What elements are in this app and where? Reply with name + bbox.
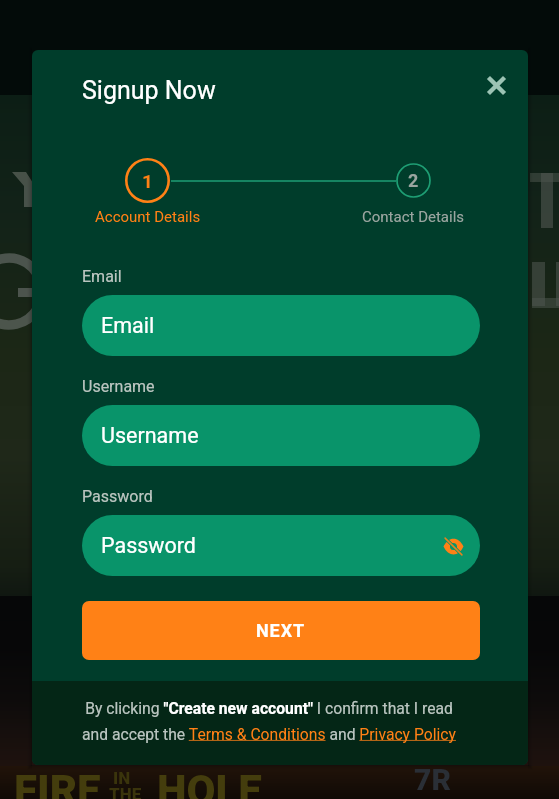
staticText: 2 [408,170,419,191]
button[interactable]: 2 [396,163,431,198]
staticText: IN [113,768,131,788]
staticText: Email [101,313,155,338]
button[interactable]: Password [82,515,480,576]
button[interactable]: NEXT [82,601,480,660]
button[interactable]: Username [82,405,480,466]
staticText: Contact Details [362,208,465,226]
staticText: By clicking "Create new account" I confi… [80,699,458,743]
staticText: 1 [142,170,153,192]
staticText: Username [82,377,155,396]
staticText: Password [101,533,196,558]
staticText: Signup Now [82,76,216,105]
staticText: THE [109,784,142,799]
staticText: HOLE [157,766,262,799]
button[interactable]: Email [82,295,480,356]
staticText: NEXT [256,620,306,641]
button[interactable]: Close [476,65,516,105]
staticText: FIRE [14,766,101,799]
staticText: Password [82,487,153,506]
staticText: Email [82,267,122,286]
staticText: Username [101,423,199,448]
button[interactable]: 1 [125,158,170,203]
staticText: Account Details [95,208,201,226]
staticText: 7R [414,762,451,797]
button[interactable]: Toggle password visibility [438,531,468,561]
